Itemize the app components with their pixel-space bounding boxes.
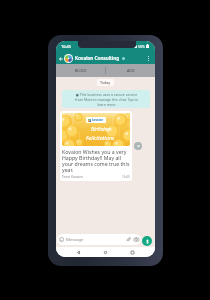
button[interactable]: Message — [59, 234, 139, 245]
button[interactable]: Voice message — [142, 236, 152, 246]
staticText: BLOCK — [75, 68, 87, 73]
staticText: Kovaion Consulting — [75, 55, 120, 61]
staticText: 16:45 — [61, 44, 71, 49]
button[interactable]: Scroll to bottom — [134, 142, 142, 150]
button[interactable]: Back — [74, 248, 83, 257]
button[interactable]: Recents — [128, 248, 137, 257]
button[interactable]: BLOCK — [56, 64, 105, 77]
button[interactable]: ADD — [106, 64, 155, 77]
staticText: kovaion — [92, 118, 104, 122]
staticText: ADD — [127, 68, 135, 73]
staticText: Message — [66, 237, 84, 243]
staticText: 58% — [138, 44, 145, 49]
staticText: Today — [100, 80, 111, 85]
staticText: 16:45 — [122, 175, 130, 179]
button[interactable]: ● This business uses a secure service fr… — [62, 90, 150, 108]
staticText: ● This business uses a secure service fr… — [66, 92, 147, 107]
button[interactable]: Back — [57, 55, 64, 62]
staticText: Team Kovaion — [62, 175, 83, 179]
button[interactable]: More options — [144, 54, 152, 62]
staticText: Felicitations — [86, 134, 115, 141]
staticText: Birthday — [91, 126, 110, 133]
staticText: Kovaion Wishes you a very Happy Birthday… — [62, 148, 130, 173]
button[interactable]: Home — [101, 248, 110, 257]
